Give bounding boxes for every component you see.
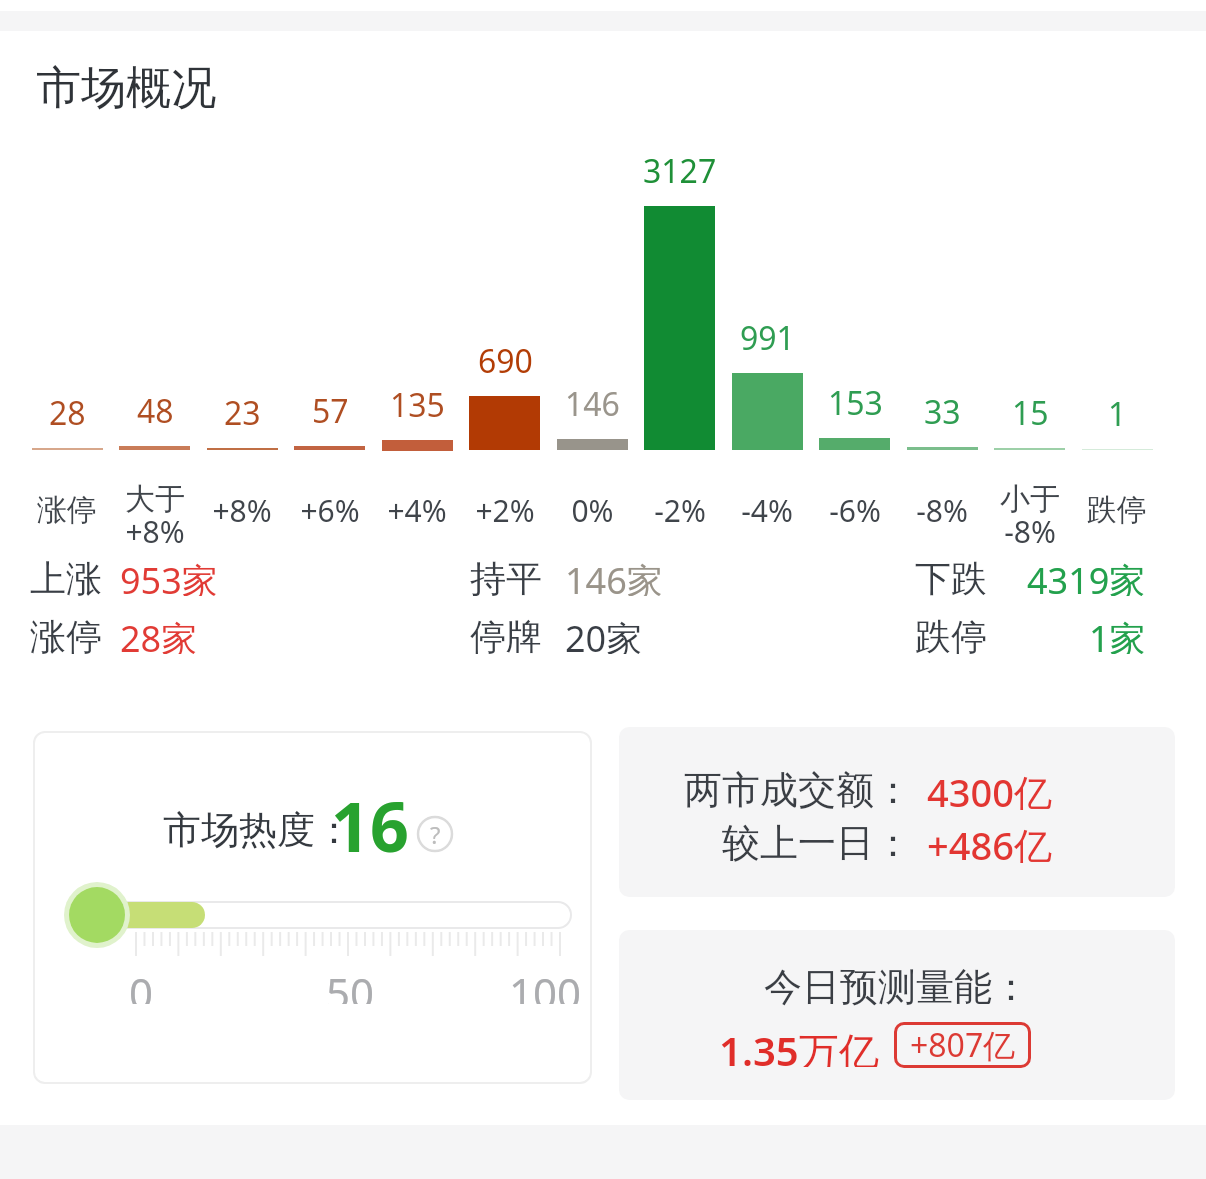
staticText: 大于 +8%	[125, 480, 185, 546]
staticText: 100	[509, 964, 582, 1004]
staticText: 较上一日：	[722, 819, 912, 863]
staticText: 15	[1012, 391, 1049, 435]
staticText: 持平	[470, 556, 542, 596]
staticText: 16	[331, 779, 409, 859]
staticText: ?	[430, 818, 441, 851]
staticText: 下跌	[915, 556, 987, 596]
staticText: +486亿	[927, 819, 1052, 863]
staticText: 3127	[643, 149, 717, 193]
staticText: +6%	[300, 490, 360, 531]
staticText: 20家	[565, 614, 643, 654]
staticText: 1家	[1089, 614, 1146, 654]
staticText: 57	[312, 389, 349, 433]
staticText: +8%	[212, 490, 272, 531]
button[interactable]: +807亿	[894, 1022, 1031, 1068]
staticText: 48	[137, 389, 174, 433]
staticText: 涨停	[37, 491, 97, 529]
staticText: 今日预测量能：	[764, 963, 1030, 1007]
staticText: 135	[390, 383, 445, 427]
staticText: 小于 -8%	[1000, 480, 1060, 546]
staticText: 停牌	[470, 614, 542, 654]
staticText: 跌停	[915, 614, 987, 654]
staticText: -2%	[654, 490, 706, 531]
staticText: 市场热度：	[163, 806, 353, 850]
button[interactable]	[619, 930, 1175, 1100]
button[interactable]	[33, 731, 592, 1084]
staticText: 上涨	[30, 556, 102, 596]
staticText: 0%	[571, 490, 614, 531]
staticText: 33	[924, 390, 961, 434]
staticText: 跌停	[1087, 491, 1147, 529]
staticText: 28家	[120, 614, 198, 654]
staticText: -8%	[916, 490, 968, 531]
staticText: 1	[1108, 392, 1127, 436]
staticText: 1.35万亿	[719, 1023, 879, 1067]
staticText: 4319家	[1027, 556, 1146, 596]
staticText: 690	[478, 339, 533, 383]
button[interactable]	[619, 727, 1175, 897]
staticText: 23	[224, 391, 261, 435]
staticText: 50	[326, 964, 375, 1004]
staticText: 4300亿	[927, 766, 1052, 810]
staticText: +4%	[387, 490, 447, 531]
staticText: 28	[49, 391, 86, 435]
staticText: -4%	[741, 490, 793, 531]
staticText: 153	[828, 381, 883, 425]
staticText: 市场概况	[36, 60, 216, 116]
staticText: -6%	[829, 490, 881, 531]
staticText: 146家	[565, 556, 663, 596]
staticText: +2%	[475, 490, 535, 531]
staticText: 两市成交额：	[684, 766, 912, 810]
staticText: 991	[740, 316, 795, 360]
button[interactable]: ?	[418, 817, 452, 851]
staticText: 涨停	[30, 614, 102, 654]
staticText: +807亿	[910, 1023, 1016, 1067]
staticText: 146	[565, 382, 620, 426]
staticText: 953家	[120, 556, 218, 596]
staticText: 0	[129, 964, 154, 1004]
